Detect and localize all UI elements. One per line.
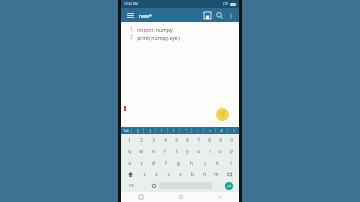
staticText: 4 xyxy=(164,137,167,143)
button[interactable]: 9 xyxy=(215,135,226,145)
staticText: t xyxy=(176,148,178,154)
button[interactable]: g xyxy=(172,158,185,168)
staticText: 3 xyxy=(152,137,155,143)
staticText: l xyxy=(230,160,232,166)
button[interactable]: Search xyxy=(214,10,224,20)
staticText: n xyxy=(203,171,206,177)
button[interactable]: 7 xyxy=(193,135,204,145)
staticText: i xyxy=(209,148,211,154)
button[interactable]: m xyxy=(210,169,222,179)
button[interactable]: Shift xyxy=(123,169,138,179)
button[interactable]: !?# xyxy=(123,180,140,191)
button[interactable]: Enter xyxy=(221,180,237,191)
button[interactable]: o xyxy=(215,146,226,156)
button[interactable]: 5 xyxy=(171,135,182,145)
button[interactable]: e xyxy=(147,146,159,156)
button[interactable]: u xyxy=(193,146,204,156)
staticText: s xyxy=(140,160,143,166)
button[interactable]: w xyxy=(135,146,147,156)
button[interactable]: q xyxy=(123,146,135,156)
button[interactable]: [ xyxy=(132,127,143,134)
staticText: new* xyxy=(139,12,152,19)
button[interactable]: " xyxy=(180,127,191,134)
button[interactable]: 1 xyxy=(123,135,135,145)
staticText: c xyxy=(167,171,170,177)
button[interactable]: i xyxy=(204,146,215,156)
button[interactable]: z xyxy=(138,169,150,179)
staticText: [ xyxy=(137,129,139,133)
button[interactable]: Tab xyxy=(121,127,131,134)
button[interactable]: # xyxy=(216,127,227,134)
button[interactable]: = xyxy=(204,127,215,134)
button[interactable]: Home xyxy=(161,192,200,202)
staticText: g xyxy=(177,160,180,166)
button[interactable]: : xyxy=(192,127,203,134)
button[interactable]: v xyxy=(174,169,186,179)
staticText: 1 xyxy=(130,26,133,33)
staticText: y xyxy=(186,148,189,154)
button[interactable]: ( xyxy=(156,127,167,134)
button[interactable]: ] xyxy=(144,127,155,134)
button[interactable]: 2 xyxy=(135,135,147,145)
button[interactable]: d xyxy=(147,158,159,168)
button[interactable]: l xyxy=(224,158,237,168)
staticText: print xyxy=(137,34,149,41)
button[interactable]: a xyxy=(123,158,135,168)
staticText: numpy xyxy=(154,26,173,33)
button[interactable]: Backspace xyxy=(222,169,237,179)
staticText: j xyxy=(204,160,206,166)
staticText: ] xyxy=(149,129,151,133)
button[interactable]: More options xyxy=(226,11,235,20)
button[interactable]: Save xyxy=(202,10,212,20)
staticText: import xyxy=(137,26,154,33)
button[interactable]: k xyxy=(211,158,224,168)
staticText: 5 xyxy=(175,137,178,143)
button[interactable]: j xyxy=(198,158,211,168)
staticText: v xyxy=(179,171,182,177)
button[interactable]: b xyxy=(186,169,198,179)
staticText: . xyxy=(216,183,218,189)
button[interactable]: f xyxy=(159,158,172,168)
button[interactable]: < xyxy=(228,127,239,134)
button[interactable]: y xyxy=(182,146,193,156)
button[interactable]: t xyxy=(171,146,182,156)
staticText: u xyxy=(197,148,200,154)
button[interactable]: c xyxy=(162,169,174,179)
button[interactable]: ) xyxy=(168,127,179,134)
staticText: x xyxy=(155,171,158,177)
button[interactable]: 3 xyxy=(147,135,159,145)
button[interactable]: , xyxy=(140,180,149,191)
button[interactable]: s xyxy=(135,158,147,168)
staticText: b xyxy=(191,171,194,177)
button[interactable]: h xyxy=(185,158,198,168)
button[interactable]: 4 xyxy=(159,135,171,145)
button[interactable]: 8 xyxy=(204,135,215,145)
staticText: Tab xyxy=(123,129,129,133)
button[interactable]: Run xyxy=(216,108,229,121)
button[interactable]: Emoji xyxy=(149,180,159,191)
button[interactable]: Recents xyxy=(121,192,161,202)
button[interactable]: Menu xyxy=(125,10,135,20)
button[interactable]: 0 xyxy=(226,135,237,145)
staticText: m xyxy=(214,171,219,177)
button[interactable]: Back xyxy=(200,192,239,202)
staticText: = xyxy=(209,129,211,133)
button[interactable]: 6 xyxy=(182,135,193,145)
staticText: q xyxy=(128,148,131,154)
staticText: e xyxy=(152,148,155,154)
button[interactable]: n xyxy=(198,169,210,179)
staticText: o xyxy=(219,148,222,154)
staticText: , xyxy=(144,183,146,189)
staticText: h xyxy=(190,160,193,166)
staticText: d xyxy=(152,160,155,166)
button[interactable]: x xyxy=(150,169,162,179)
button[interactable]: r xyxy=(159,146,171,156)
staticText: ) xyxy=(173,129,174,133)
staticText: 1 xyxy=(128,137,131,143)
staticText: ( xyxy=(149,34,151,41)
staticText: w xyxy=(139,148,143,154)
staticText: 2 xyxy=(130,34,133,41)
button[interactable]: p xyxy=(226,146,237,156)
button[interactable]: . xyxy=(212,180,221,191)
